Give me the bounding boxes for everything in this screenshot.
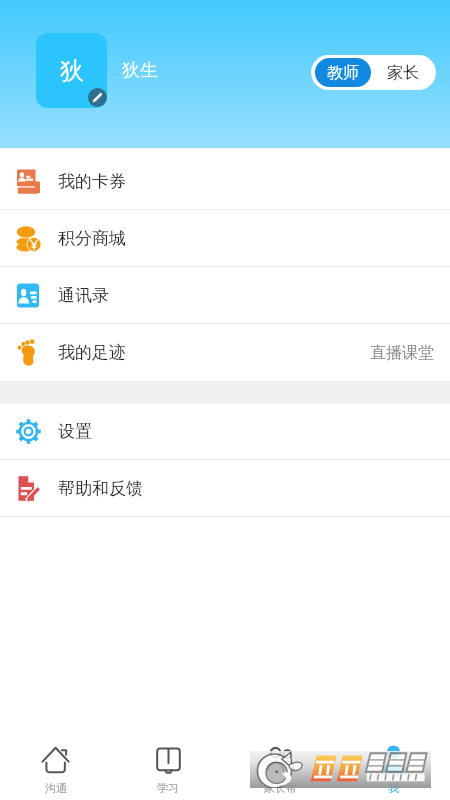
- staticText: 我的足迹: [58, 342, 126, 363]
- button[interactable]: Edit profile: [88, 88, 107, 107]
- button[interactable]: 学习: [112, 739, 224, 800]
- staticText: 帮助和反馈: [58, 478, 143, 499]
- staticText: 沟通: [45, 781, 67, 795]
- staticText: 狄生: [122, 59, 158, 82]
- staticText: 家长帮: [264, 781, 297, 795]
- button[interactable]: 家长: [374, 58, 432, 87]
- button[interactable]: 我的卡券: [0, 148, 450, 209]
- button[interactable]: 狄: [36, 33, 107, 108]
- button[interactable]: 通讯录: [0, 267, 450, 323]
- staticText: 家长: [387, 63, 419, 83]
- staticText: 直播课堂: [370, 343, 434, 363]
- staticText: 教师: [327, 63, 359, 83]
- staticText: 学习: [157, 781, 179, 795]
- staticText: 通讯录: [58, 285, 109, 306]
- button[interactable]: 沟通: [0, 739, 112, 800]
- staticText: 我的卡券: [58, 171, 126, 192]
- staticText: 设置: [58, 421, 92, 442]
- button[interactable]: 设置: [0, 404, 450, 459]
- button[interactable]: 教师: [315, 58, 371, 87]
- button[interactable]: 我: [337, 739, 450, 800]
- staticText: 狄: [60, 56, 84, 86]
- button[interactable]: 家长帮: [224, 739, 337, 800]
- button[interactable]: 积分商城: [0, 210, 450, 266]
- button[interactable]: 帮助和反馈: [0, 460, 450, 516]
- button[interactable]: 我的足迹: [0, 324, 450, 381]
- staticText: 积分商城: [58, 228, 126, 249]
- staticText: 我: [388, 781, 399, 795]
